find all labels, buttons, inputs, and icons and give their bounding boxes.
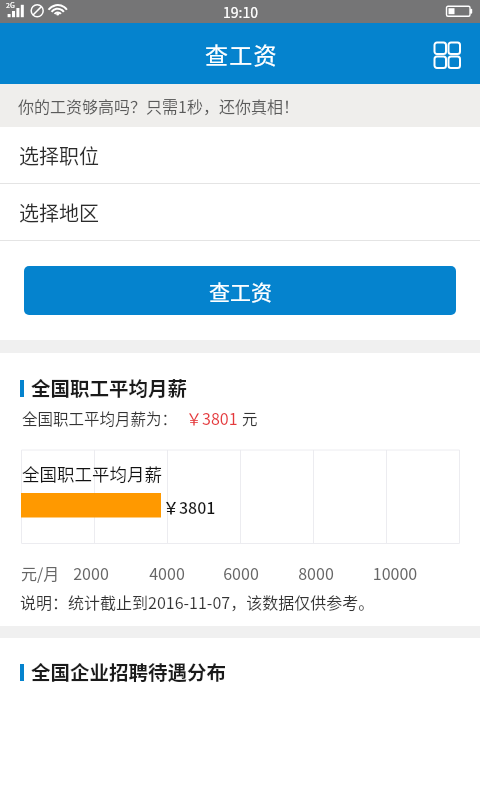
- button[interactable]: Grid menu: [421, 28, 473, 80]
- staticText: 6000: [201, 561, 281, 584]
- staticText: 2G: [6, 0, 15, 10]
- button[interactable]: 选择职位: [0, 127, 480, 183]
- staticText: 19:10: [223, 2, 258, 22]
- staticText: 10000: [355, 561, 435, 584]
- staticText: 元: [242, 407, 258, 429]
- staticText: 全国职工平均月薪: [22, 461, 162, 486]
- button[interactable]: 选择地区: [0, 184, 480, 240]
- staticText: 4000: [127, 561, 207, 584]
- staticText: 查工资: [209, 276, 272, 306]
- staticText: 选择地区: [19, 198, 99, 227]
- staticText: 元/月: [21, 561, 60, 584]
- staticText: ￥3801: [186, 406, 238, 429]
- staticText: 全国职工平均月薪: [31, 373, 188, 401]
- staticText: 你的工资够高吗？只需1秒，还你真相！: [18, 94, 299, 117]
- staticText: 选择职位: [19, 141, 99, 170]
- staticText: 全国企业招聘待遇分布: [31, 657, 227, 685]
- staticText: ￥3801: [163, 495, 216, 518]
- button[interactable]: 查工资: [24, 266, 456, 315]
- staticText: 8000: [276, 561, 356, 584]
- staticText: 查工资: [205, 37, 278, 70]
- staticText: 说明：统计截止到2016-11-07，该数据仅供参考。: [20, 590, 375, 613]
- staticText: 2000: [51, 561, 131, 584]
- staticText: 全国职工平均月薪为：: [22, 407, 178, 429]
